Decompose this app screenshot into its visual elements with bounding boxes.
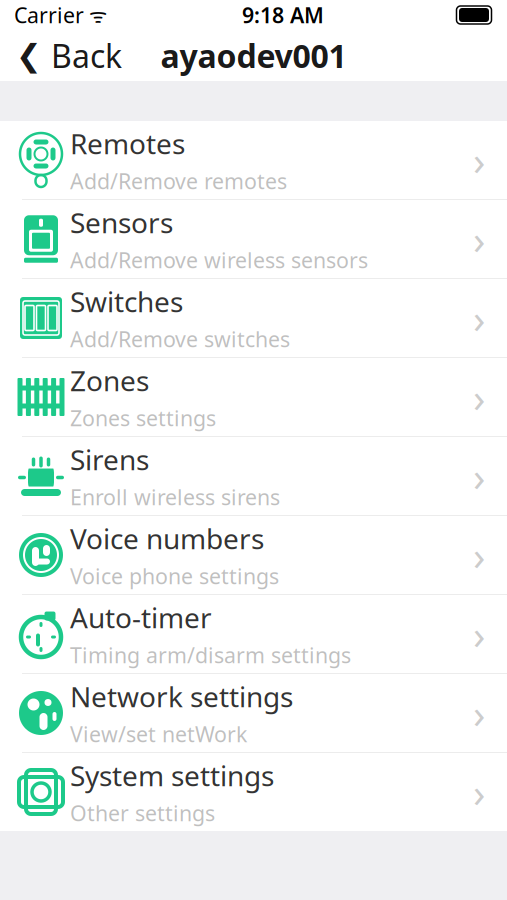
staticText: System settings bbox=[70, 757, 274, 794]
button[interactable]: Sirens bbox=[0, 437, 507, 516]
staticText: 9:18 AM bbox=[242, 1, 324, 29]
staticText: Switches bbox=[70, 283, 183, 320]
staticText: › bbox=[473, 686, 485, 739]
button[interactable]: ❮ bbox=[0, 30, 134, 80]
button[interactable]: Voice numbers bbox=[0, 516, 507, 595]
staticText: Timing arm/disarm settings bbox=[70, 641, 351, 669]
staticText: Enroll wireless sirens bbox=[70, 483, 280, 511]
staticText: Zones settings bbox=[70, 404, 216, 432]
staticText: Sirens bbox=[70, 441, 149, 478]
staticText: Auto-timer bbox=[70, 599, 212, 636]
staticText: ❮ bbox=[16, 38, 42, 73]
staticText: Other settings bbox=[70, 799, 215, 827]
staticText: Back bbox=[51, 34, 122, 77]
staticText: Voice numbers bbox=[70, 520, 264, 557]
staticText: Sensors bbox=[70, 204, 173, 241]
staticText: Carrier bbox=[14, 1, 84, 29]
staticText: › bbox=[473, 528, 485, 581]
staticText: Voice phone settings bbox=[70, 562, 279, 590]
staticText: › bbox=[473, 212, 485, 265]
staticText: ᯤ bbox=[84, 2, 107, 28]
button[interactable]: System settings bbox=[0, 753, 507, 831]
staticText: › bbox=[473, 133, 485, 186]
staticText: Network settings bbox=[70, 678, 293, 715]
button[interactable]: Zones bbox=[0, 358, 507, 437]
staticText: Add/Remove wireless sensors bbox=[70, 246, 368, 274]
staticText: ayaodev001 bbox=[160, 34, 346, 77]
staticText: Remotes bbox=[70, 125, 185, 162]
button[interactable]: Auto-timer bbox=[0, 595, 507, 674]
button[interactable]: Sensors bbox=[0, 200, 507, 279]
staticText: Zones bbox=[70, 362, 149, 399]
staticText: View/set netWork bbox=[70, 720, 247, 748]
staticText: Add/Remove switches bbox=[70, 325, 290, 353]
staticText: › bbox=[473, 449, 485, 502]
button[interactable]: Switches bbox=[0, 279, 507, 358]
staticText: › bbox=[473, 291, 485, 344]
staticText: › bbox=[473, 765, 485, 818]
button[interactable]: Network settings bbox=[0, 674, 507, 753]
button[interactable]: Remotes bbox=[0, 121, 507, 200]
staticText: Add/Remove remotes bbox=[70, 167, 287, 195]
staticText: › bbox=[473, 370, 485, 423]
staticText: › bbox=[473, 607, 485, 660]
